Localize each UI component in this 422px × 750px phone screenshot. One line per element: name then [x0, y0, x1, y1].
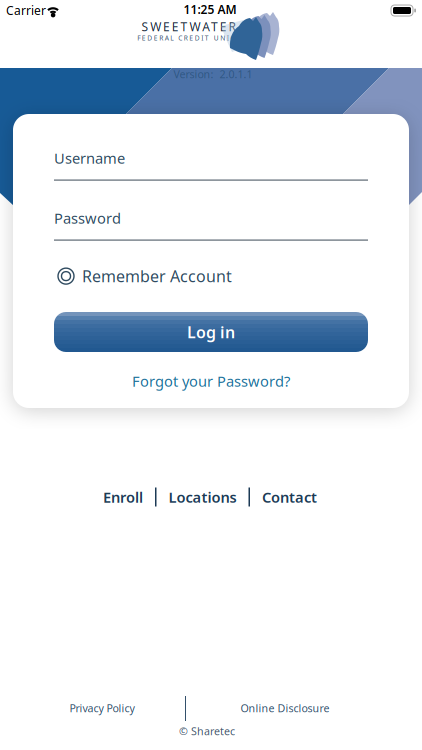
staticText: Locations	[168, 487, 236, 507]
button[interactable]: Remember Account	[58, 265, 232, 287]
button[interactable]: Username	[54, 148, 368, 181]
staticText: FEDERAL CREDIT UNION	[137, 34, 242, 42]
button[interactable]: Privacy Policy	[69, 701, 134, 715]
button[interactable]: Contact	[262, 487, 317, 507]
staticText: SWEETWATER	[141, 18, 236, 34]
staticText: Enroll	[103, 487, 143, 507]
button[interactable]: Online Disclosure	[240, 701, 329, 715]
staticText: Remember Account	[82, 265, 232, 287]
button[interactable]: Log in	[54, 312, 368, 352]
button[interactable]: Forgot your Password?	[132, 371, 290, 391]
button[interactable]: Locations	[168, 487, 236, 507]
staticText: Carrier	[6, 2, 46, 18]
staticText: Username	[54, 148, 125, 168]
staticText: Online Disclosure	[240, 701, 329, 715]
button[interactable]: Enroll	[103, 487, 143, 507]
staticText: 11:25 AM	[183, 1, 236, 17]
staticText: © Sharetec	[179, 724, 235, 738]
staticText: Forgot your Password?	[132, 371, 290, 391]
button[interactable]: Password	[54, 208, 368, 241]
staticText: Version: 2.0.1.1	[173, 67, 252, 81]
staticText: Contact	[262, 487, 317, 507]
staticText: Log in	[187, 321, 235, 343]
staticText: Privacy Policy	[69, 701, 134, 715]
staticText: Password	[54, 208, 121, 228]
